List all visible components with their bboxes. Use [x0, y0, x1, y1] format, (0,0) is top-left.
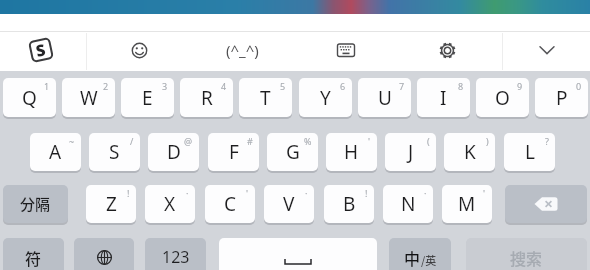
- button[interactable]: B: [324, 185, 374, 223]
- staticText: 6: [340, 80, 346, 92]
- button[interactable]: 中: [389, 238, 451, 270]
- staticText: #: [247, 135, 253, 147]
- staticText: /: [130, 135, 134, 147]
- staticText: A: [49, 139, 62, 165]
- staticText: ?: [545, 135, 549, 147]
- button[interactable]: K: [444, 133, 495, 171]
- button[interactable]: C: [205, 185, 255, 223]
- button[interactable]: J: [385, 133, 436, 171]
- staticText: ): [486, 135, 489, 147]
- staticText: !: [127, 187, 130, 199]
- button[interactable]: [219, 238, 377, 270]
- button[interactable]: Z: [86, 185, 136, 223]
- staticText: 中: [404, 246, 421, 269]
- staticText: F: [229, 139, 239, 165]
- button[interactable]: (^_^): [222, 40, 263, 60]
- staticText: V: [283, 191, 295, 217]
- staticText: ': [483, 187, 486, 199]
- staticText: 符: [25, 246, 42, 269]
- staticText: 搜索: [510, 246, 543, 269]
- button[interactable]: L: [504, 133, 555, 171]
- staticText: /英: [421, 252, 437, 268]
- staticText: X: [164, 191, 176, 217]
- staticText: O: [495, 85, 510, 111]
- button[interactable]: A: [30, 133, 81, 171]
- staticText: P: [556, 85, 568, 111]
- button[interactable]: [74, 238, 134, 270]
- staticText: (: [427, 135, 430, 147]
- button[interactable]: G: [267, 133, 318, 171]
- staticText: 4: [221, 80, 227, 92]
- button[interactable]: W: [62, 78, 115, 117]
- button[interactable]: H: [326, 133, 377, 171]
- button[interactable]: [129, 40, 150, 61]
- staticText: K: [464, 139, 476, 165]
- staticText: R: [201, 85, 213, 111]
- button[interactable]: 123: [145, 238, 206, 270]
- staticText: J: [408, 139, 414, 165]
- button[interactable]: U: [358, 78, 411, 117]
- button[interactable]: V: [264, 185, 314, 223]
- staticText: 3: [162, 80, 168, 92]
- staticText: H: [344, 139, 359, 165]
- staticText: !: [365, 187, 368, 199]
- staticText: (^_^): [226, 40, 259, 60]
- button[interactable]: 分隔: [3, 185, 68, 223]
- staticText: L: [525, 139, 535, 165]
- button[interactable]: Y: [299, 78, 352, 117]
- button[interactable]: 搜索: [466, 238, 587, 270]
- staticText: 9: [517, 80, 523, 92]
- staticText: ·: [186, 187, 189, 199]
- staticText: ·: [305, 187, 308, 199]
- button[interactable]: R: [180, 78, 233, 117]
- button[interactable]: [536, 42, 558, 58]
- staticText: S: [109, 139, 120, 165]
- staticText: C: [224, 191, 237, 217]
- button[interactable]: [336, 41, 356, 59]
- button[interactable]: E: [121, 78, 174, 117]
- staticText: W: [80, 85, 98, 111]
- staticText: 2: [103, 80, 109, 92]
- staticText: I: [440, 85, 447, 111]
- staticText: 分隔: [20, 193, 51, 215]
- staticText: ': [246, 187, 249, 199]
- staticText: 0: [576, 80, 582, 92]
- staticText: D: [167, 139, 181, 165]
- staticText: N: [401, 191, 416, 217]
- button[interactable]: 符: [3, 238, 64, 270]
- staticText: ·: [424, 187, 427, 199]
- staticText: ': [368, 135, 371, 147]
- staticText: ~: [69, 135, 75, 147]
- button[interactable]: I: [417, 78, 470, 117]
- button[interactable]: Q: [3, 78, 56, 117]
- staticText: 7: [399, 80, 405, 92]
- staticText: Y: [320, 85, 331, 111]
- staticText: Q: [22, 85, 37, 111]
- staticText: E: [142, 85, 153, 111]
- button[interactable]: [505, 185, 587, 223]
- button[interactable]: X: [145, 185, 195, 223]
- button[interactable]: S: [28, 37, 54, 63]
- staticText: T: [260, 85, 271, 111]
- staticText: %: [304, 135, 312, 147]
- button[interactable]: S: [89, 133, 140, 171]
- staticText: U: [378, 85, 392, 111]
- staticText: 1: [44, 80, 50, 92]
- button[interactable]: O: [476, 78, 529, 117]
- button[interactable]: N: [383, 185, 433, 223]
- staticText: M: [458, 191, 476, 217]
- staticText: 123: [162, 246, 190, 268]
- staticText: 8: [458, 80, 464, 92]
- button[interactable]: P: [535, 78, 588, 117]
- button[interactable]: M: [442, 185, 492, 223]
- button[interactable]: [437, 40, 458, 61]
- staticText: B: [343, 191, 356, 217]
- staticText: G: [286, 139, 300, 165]
- staticText: 5: [280, 80, 286, 92]
- button[interactable]: D: [148, 133, 199, 171]
- staticText: @: [184, 135, 193, 147]
- staticText: Z: [106, 191, 117, 217]
- staticText: S: [34, 38, 48, 62]
- button[interactable]: F: [208, 133, 259, 171]
- button[interactable]: T: [239, 78, 292, 117]
